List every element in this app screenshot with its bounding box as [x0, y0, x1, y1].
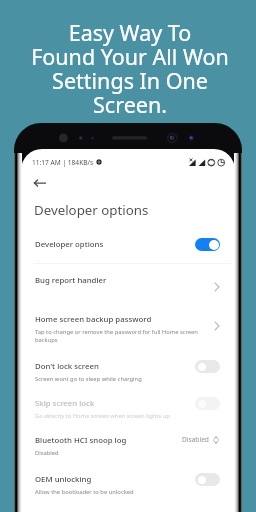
- button[interactable]: Bluetooth HCI snoop log: [21, 435, 235, 457]
- staticText: Disabled: [182, 435, 209, 444]
- button[interactable]: Developer options: [21, 239, 235, 252]
- staticText: Skip screen lock: [35, 398, 95, 409]
- staticText: Disabled: [35, 449, 59, 457]
- staticText: Tap to change or remove the password for…: [35, 328, 198, 344]
- button[interactable]: Back: [29, 172, 51, 194]
- staticText: Go directly to Home screen when screen l…: [35, 412, 170, 420]
- button[interactable]: Toggle Don't lock screen: [195, 360, 220, 373]
- button[interactable]: Toggle Skip screen lock: [195, 397, 220, 410]
- button[interactable]: OEM unlocking: [21, 474, 235, 496]
- button[interactable]: Home screen backup password: [21, 314, 235, 344]
- staticText: Screen wont go to sleep while charging: [35, 375, 142, 383]
- staticText: 11:17 AM | 184KB/s: [32, 158, 94, 167]
- button[interactable]: Toggle OEM unlocking: [195, 473, 220, 486]
- staticText: Don't lock screen: [35, 361, 99, 372]
- staticText: Bug report handler: [35, 275, 107, 286]
- staticText: Developer options: [35, 239, 104, 250]
- staticText: Developer options: [34, 201, 149, 219]
- staticText: OEM unlocking: [35, 474, 92, 485]
- button[interactable]: Toggle Developer options: [195, 238, 220, 251]
- button[interactable]: Skip screen lock: [21, 398, 235, 420]
- staticText: Easy Way To Found Your All Won Settings …: [31, 18, 229, 119]
- staticText: Allow the bootloader to be unlocked: [35, 488, 134, 496]
- button[interactable]: Don't lock screen: [21, 361, 235, 383]
- staticText: Bluetooth HCI snoop log: [35, 435, 127, 446]
- staticText: Home screen backup password: [35, 314, 152, 325]
- button[interactable]: Bug report handler: [21, 275, 235, 286]
